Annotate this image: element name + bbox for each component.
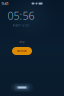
staticText: Alarm • 6:00 (12, 24, 29, 27)
staticText: Stop (19, 40, 25, 43)
staticText: Snooze (17, 49, 27, 53)
button[interactable]: Snooze (12, 47, 32, 55)
staticText: 05:56 (7, 8, 34, 23)
staticText: 9:41 (1, 1, 8, 6)
